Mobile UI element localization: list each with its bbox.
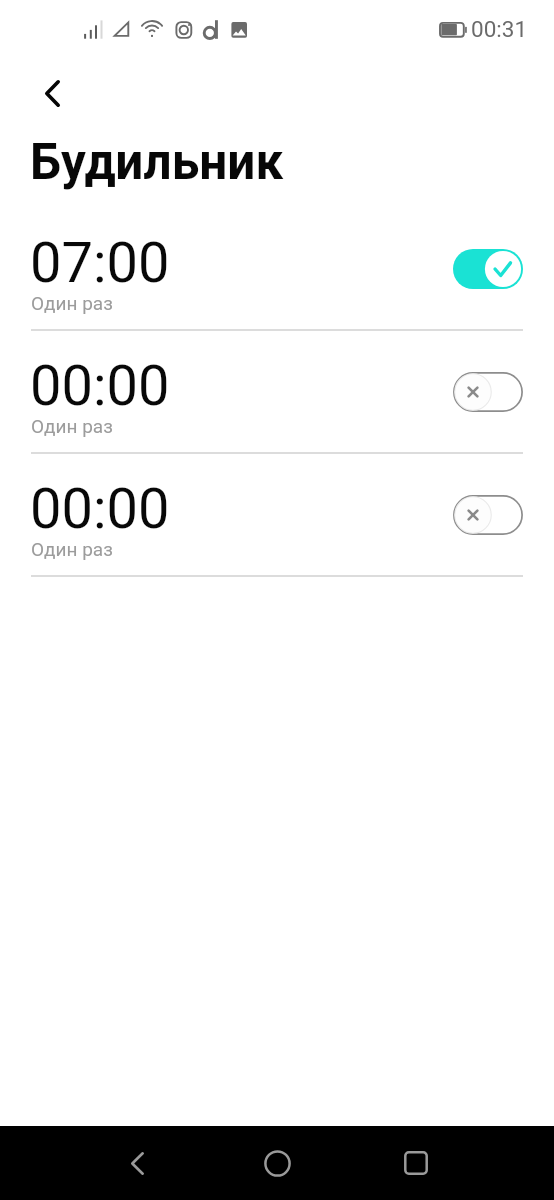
staticText: Один раз <box>31 415 113 437</box>
staticText: Будильник <box>30 133 284 191</box>
button[interactable]: Back <box>28 69 76 117</box>
staticText: Один раз <box>31 538 113 560</box>
button[interactable]: Alarm disabled <box>453 495 523 535</box>
button[interactable]: 00:00 <box>0 330 554 453</box>
staticText: 00:00 <box>30 476 170 542</box>
button[interactable]: Recent apps <box>379 1126 453 1200</box>
button[interactable]: Alarm enabled <box>453 249 523 289</box>
button[interactable]: Home <box>240 1126 314 1200</box>
button[interactable]: 07:00 <box>0 207 554 330</box>
button[interactable]: 00:00 <box>0 453 554 576</box>
staticText: 00:00 <box>30 353 170 419</box>
button[interactable]: Back <box>100 1126 174 1200</box>
button[interactable]: Alarm disabled <box>453 372 523 412</box>
staticText: 00:31 <box>471 16 528 42</box>
staticText: Один раз <box>31 292 113 314</box>
staticText: 07:00 <box>30 230 170 296</box>
